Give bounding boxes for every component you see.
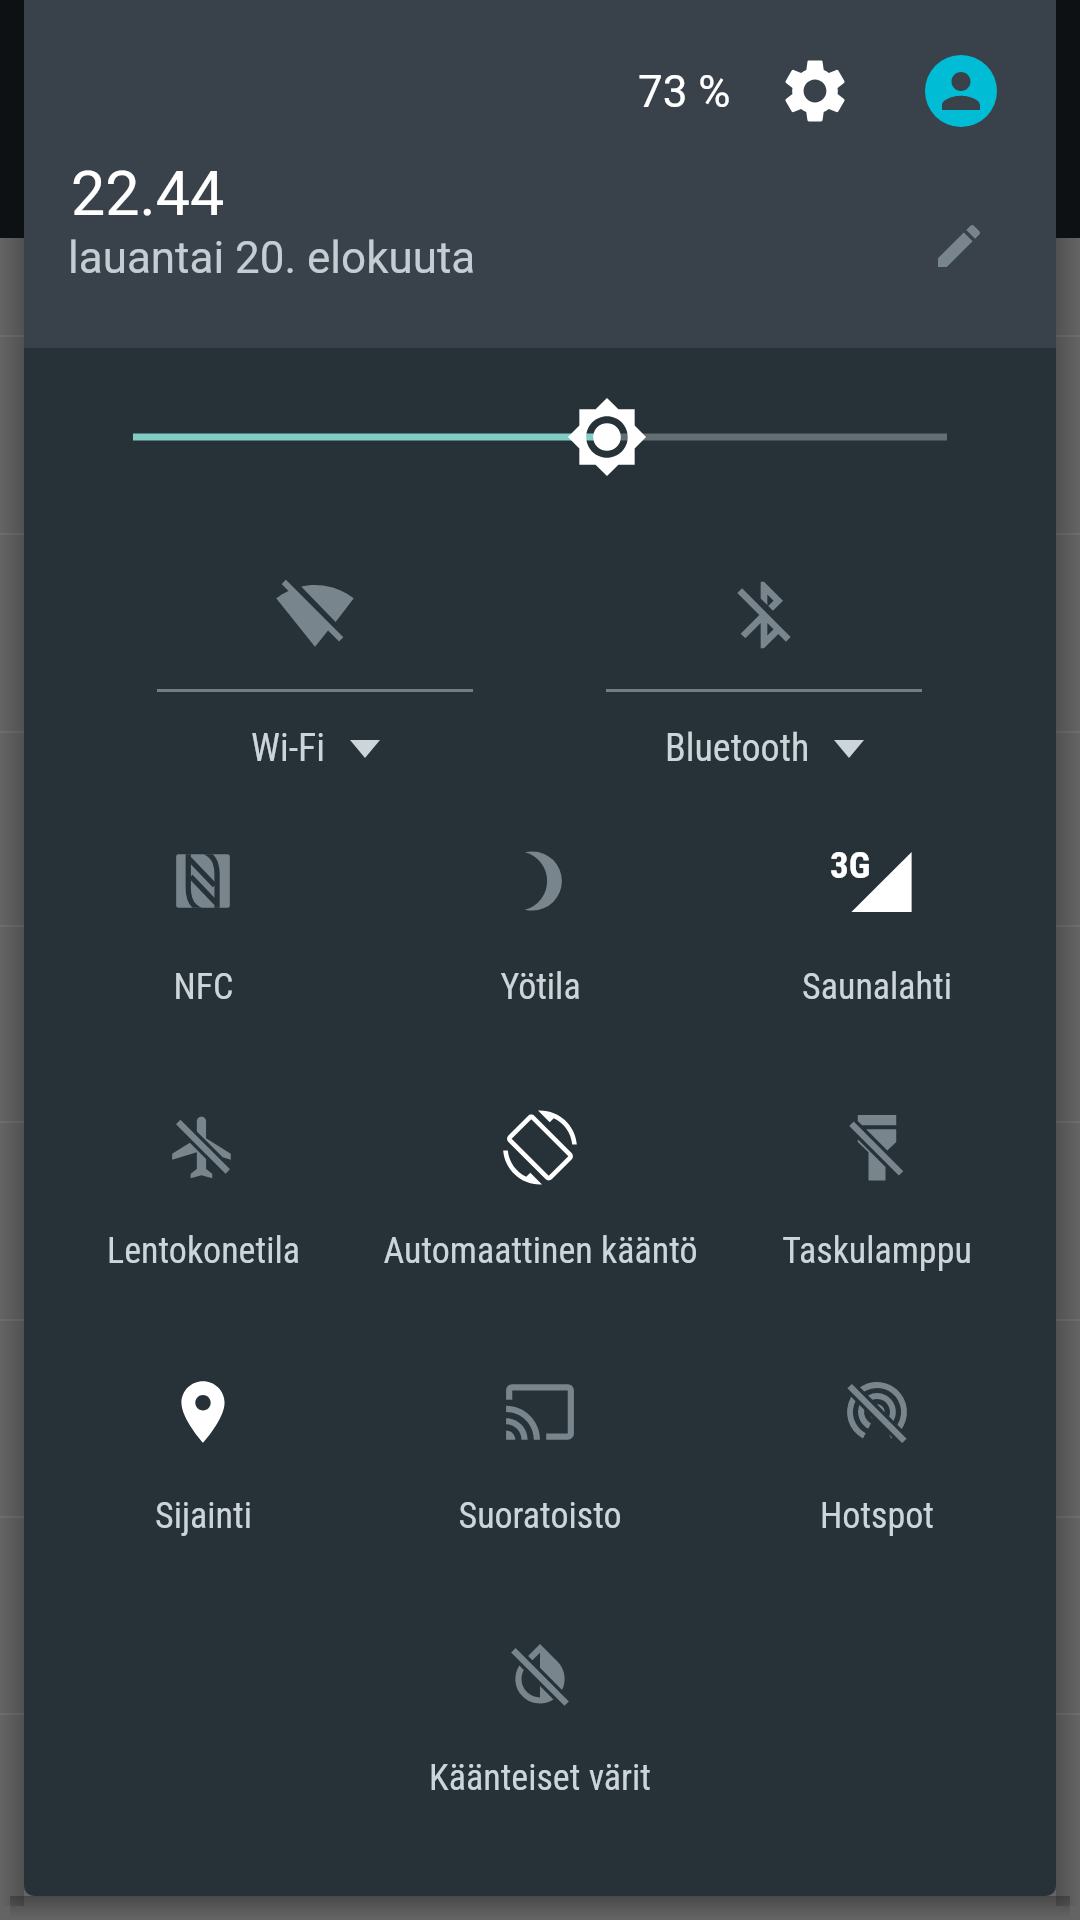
staticText: Hotspot: [820, 1495, 934, 1537]
staticText: Käänteiset värit: [429, 1757, 651, 1799]
staticText: 22.44: [71, 158, 225, 229]
button[interactable]: Settings: [770, 46, 860, 136]
staticText: Taskulamppu: [782, 1230, 972, 1272]
button[interactable]: [35, 1348, 371, 1578]
button[interactable]: [372, 1610, 708, 1840]
button[interactable]: [709, 1348, 1045, 1578]
button[interactable]: User profile: [915, 45, 1007, 137]
button[interactable]: [372, 1084, 708, 1314]
staticText: Sijainti: [155, 1495, 252, 1537]
staticText: Suoratoisto: [458, 1495, 622, 1537]
button[interactable]: [35, 1084, 371, 1314]
staticText: NFC: [173, 966, 234, 1008]
button[interactable]: [372, 818, 708, 1048]
button[interactable]: [372, 1348, 708, 1578]
staticText: 73 %: [638, 66, 731, 118]
staticText: Bluetooth: [665, 726, 810, 771]
button[interactable]: Edit: [914, 201, 1004, 291]
button[interactable]: [147, 548, 483, 748]
staticText: Saunalahti: [802, 966, 952, 1008]
button[interactable]: [35, 818, 371, 1048]
staticText: lauantai 20. elokuuta: [68, 232, 476, 284]
staticText: Yötila: [500, 966, 581, 1008]
button[interactable]: [709, 1084, 1045, 1314]
button[interactable]: [709, 818, 1045, 1048]
staticText: Lentokonetila: [107, 1230, 300, 1272]
staticText: Automaattinen kääntö: [383, 1230, 698, 1272]
button[interactable]: [596, 548, 932, 748]
staticText: 3G: [830, 844, 871, 887]
staticText: Wi-Fi: [251, 726, 326, 771]
